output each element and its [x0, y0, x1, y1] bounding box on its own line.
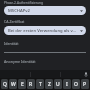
button[interactable]: E: [18, 79, 26, 89]
button[interactable]: Anonyme Identität: [4, 59, 86, 70]
button[interactable]: Voice input: [84, 72, 88, 77]
staticText: Q: [3, 81, 7, 88]
button[interactable]: I: [63, 79, 71, 89]
button[interactable]: O: [72, 79, 80, 89]
staticText: Bei der ersten Verwendung als vertrau…: [8, 28, 78, 34]
button[interactable]: Q: [1, 79, 8, 89]
button[interactable]: P: [81, 79, 89, 89]
button[interactable]: U: [54, 79, 62, 89]
button[interactable]: MSCHAPv2: [4, 6, 86, 15]
staticText: O: [74, 81, 78, 88]
button[interactable]: Bei der ersten Verwendung als vertrau…: [4, 26, 86, 35]
staticText: CA-Zertifikat: [4, 19, 25, 24]
staticText: Identität: [4, 41, 19, 46]
button[interactable]: Z: [45, 79, 53, 89]
staticText: Anonyme Identität: [4, 59, 36, 64]
staticText: Phase-2-Authentifizierung: [4, 1, 44, 5]
staticText: R: [29, 81, 33, 88]
button[interactable]: W: [9, 79, 17, 89]
staticText: T: [39, 81, 42, 88]
staticText: Z: [48, 81, 51, 88]
button[interactable]: Identität: [4, 41, 86, 53]
staticText: MSCHAPv2: [8, 8, 78, 14]
staticText: W: [11, 81, 16, 88]
staticText: E: [21, 81, 24, 88]
button[interactable]: T: [36, 79, 44, 89]
button[interactable]: [61, 70, 90, 78]
button[interactable]: R: [27, 79, 35, 89]
staticText: U: [56, 81, 60, 88]
other: Voice input: [84, 72, 88, 77]
staticText: P: [83, 81, 87, 88]
staticText: I: [66, 81, 68, 88]
